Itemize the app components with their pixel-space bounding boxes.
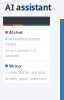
staticText: smart answers in seconds [5, 48, 36, 58]
staticText: Writer [9, 63, 22, 68]
staticText: Create text for any task [5, 69, 45, 75]
staticText: emails, posts, and more [5, 76, 47, 81]
staticText: Ask anything and get instant [5, 36, 40, 46]
staticText: AI chat [9, 30, 23, 35]
staticText: AI assistant [5, 2, 51, 13]
